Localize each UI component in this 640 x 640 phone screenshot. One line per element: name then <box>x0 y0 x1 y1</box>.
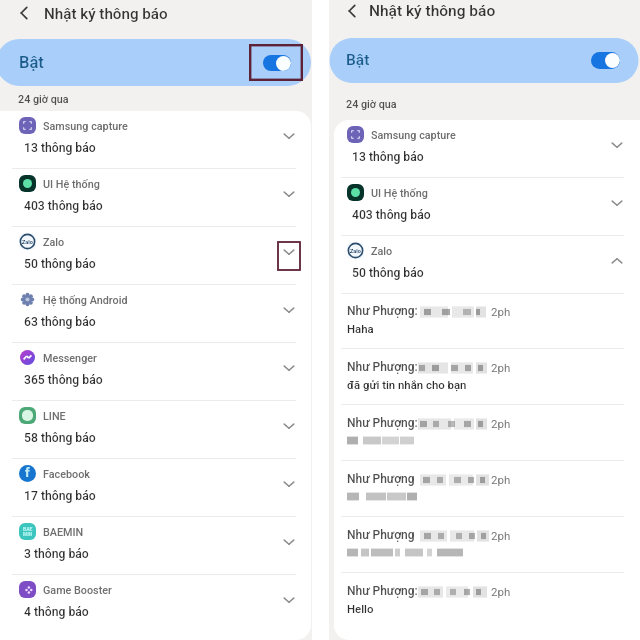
staticText: Như Phượng: <box>347 584 418 598</box>
button[interactable]: Như Phượng: <box>329 574 640 630</box>
staticText: BAE MIN <box>23 526 33 538</box>
button[interactable]: LINE <box>0 401 312 459</box>
staticText: 24 giờ qua <box>346 98 397 111</box>
button[interactable]: Samsung capture <box>0 111 312 169</box>
button[interactable]: BAE MIN <box>0 517 312 575</box>
staticText: Nhật ký thông báo <box>44 5 168 23</box>
staticText: Bật <box>346 51 370 69</box>
staticText: 24 giờ qua <box>18 93 69 106</box>
button[interactable]: Zalo <box>329 236 640 294</box>
button[interactable]: Back <box>13 2 35 24</box>
button[interactable]: Samsung capture <box>329 120 640 178</box>
staticText: BAEMIN <box>43 526 84 539</box>
button[interactable]: Back <box>341 0 363 22</box>
button[interactable]: Như Phượng <box>329 518 640 574</box>
button[interactable]: Như Phượng: <box>329 294 640 350</box>
staticText: 2ph <box>491 417 511 430</box>
staticText: 50 thông báo <box>352 266 424 280</box>
button[interactable] <box>329 0 640 640</box>
staticText: 2ph <box>491 361 511 374</box>
staticText: Zalo <box>350 248 361 254</box>
staticText: 63 thông báo <box>24 315 96 329</box>
button[interactable]: f <box>0 459 312 517</box>
staticText: 2ph <box>491 529 511 542</box>
staticText: 13 thông báo <box>352 150 424 164</box>
staticText: 4 thông báo <box>24 605 89 619</box>
staticText: Game Booster <box>43 584 112 597</box>
staticText: đã gửi tin nhắn cho bạn <box>347 378 467 391</box>
staticText: 50 thông báo <box>24 257 96 271</box>
button[interactable] <box>0 0 312 640</box>
button[interactable]: UI Hệ thống <box>329 178 640 236</box>
staticText: 403 thông báo <box>24 199 103 213</box>
staticText: Như Phượng: <box>347 360 418 374</box>
staticText: Như Phượng <box>347 528 415 542</box>
staticText: 2ph <box>491 305 511 318</box>
staticText: 3 thông báo <box>24 547 89 561</box>
staticText: 58 thông báo <box>24 431 96 445</box>
button[interactable]: Zalo <box>0 227 312 285</box>
staticText: 13 thông báo <box>24 141 96 155</box>
staticText: Hello <box>347 602 374 615</box>
staticText: 2ph <box>491 585 511 598</box>
button[interactable]: Như Phượng: <box>329 406 640 462</box>
staticText: UI Hệ thống <box>43 178 100 191</box>
staticText: Nhật ký thông báo <box>369 2 496 20</box>
staticText: Như Phượng <box>347 472 415 486</box>
button[interactable]: Toggle notification history <box>591 52 620 69</box>
staticText: 365 thông báo <box>24 373 103 387</box>
button[interactable]: Messenger <box>0 343 312 401</box>
staticText: Facebook <box>43 468 90 481</box>
staticText: f <box>25 465 30 480</box>
staticText: Như Phượng: <box>347 416 418 430</box>
button[interactable]: UI Hệ thống <box>0 169 312 227</box>
button[interactable]: Như Phượng: <box>329 350 640 406</box>
staticText: Bật <box>19 53 44 72</box>
staticText: 2ph <box>491 473 511 486</box>
staticText: Samsung capture <box>43 120 128 133</box>
button[interactable]: Như Phượng <box>329 462 640 518</box>
staticText: Zalo <box>22 239 33 245</box>
staticText: Zalo <box>371 245 393 258</box>
staticText: Hệ thống Android <box>43 294 128 307</box>
staticText: UI Hệ thống <box>371 187 428 200</box>
button[interactable]: Game Booster <box>0 575 312 633</box>
staticText: 17 thông báo <box>24 489 96 503</box>
staticText: Samsung capture <box>371 129 456 142</box>
staticText: Zalo <box>43 236 65 249</box>
staticText: 403 thông báo <box>352 208 431 222</box>
staticText: Như Phượng: <box>347 304 418 318</box>
staticText: LINE <box>43 410 66 423</box>
staticText: Haha <box>347 322 374 335</box>
button[interactable]: Hệ thống Android <box>0 285 312 343</box>
staticText: Messenger <box>43 352 97 365</box>
button[interactable]: Toggle notification history <box>263 55 291 71</box>
